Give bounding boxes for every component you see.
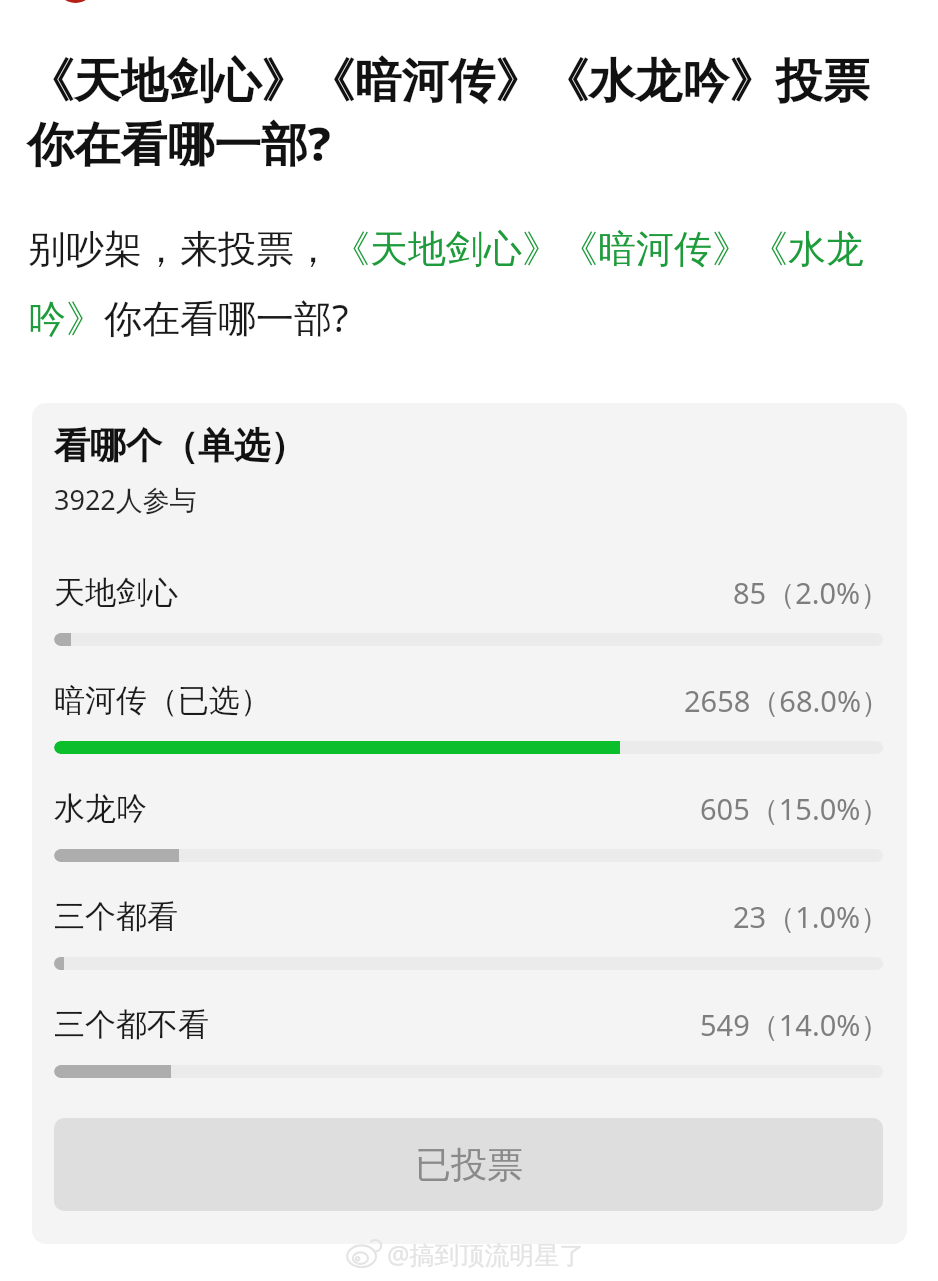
button[interactable]: 三个都看 [54, 896, 883, 970]
staticText: 三个都看 [54, 897, 178, 936]
staticText: 549（14.0%） [700, 1005, 890, 1045]
staticText: 2658（68.0%） [684, 681, 890, 721]
staticText: 三个都不看 [54, 1005, 209, 1044]
button[interactable]: 三个都不看 [54, 1004, 883, 1078]
staticText: 已投票 [415, 1142, 523, 1187]
staticText: 85（2.0%） [733, 573, 890, 613]
staticText: 605（15.0%） [700, 789, 890, 829]
button[interactable]: 暗河传（已选） [54, 680, 883, 754]
button[interactable]: 水龙吟 [54, 788, 883, 862]
button[interactable]: 已投票 [54, 1118, 883, 1211]
button[interactable]: 天地剑心 [54, 572, 883, 646]
staticText: 看哪个（单选） [54, 423, 306, 468]
staticText: 《天地剑心》《暗河传》《水龙吟》投票 你在看哪一部? [27, 52, 870, 175]
staticText: 23（1.0%） [733, 897, 890, 937]
staticText: 暗河传（已选） [54, 681, 271, 720]
staticText: @搞到顶流明星了 [387, 1237, 585, 1271]
staticText: 水龙吟 [54, 789, 147, 828]
other: Weibo [346, 1238, 386, 1270]
staticText: 别吵架，来投票，《天地剑心》《暗河传》《水龙 吟》你在看哪一部? [28, 225, 864, 344]
staticText: 天地剑心 [54, 573, 178, 612]
staticText: 3922人参与 [54, 481, 197, 518]
